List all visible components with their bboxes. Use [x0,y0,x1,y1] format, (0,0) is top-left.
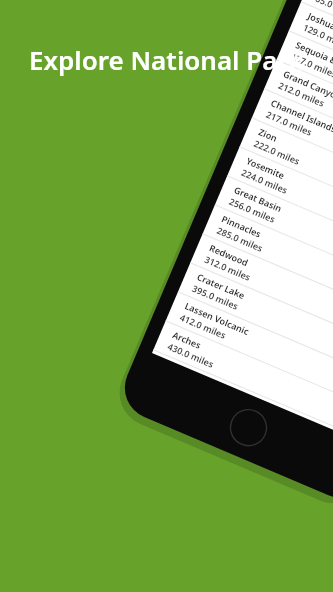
button[interactable]: Phone preview of nearby national parks [0,0,333,592]
staticText: Explore National Park [20,42,313,77]
